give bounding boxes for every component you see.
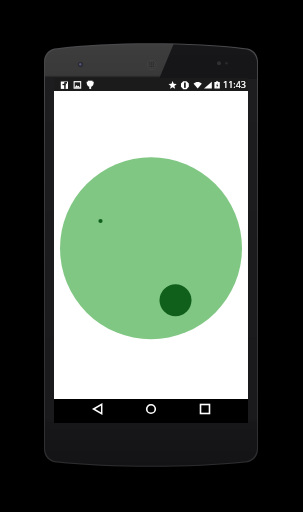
button[interactable]: Drawing canvas — [54, 91, 248, 399]
button[interactable]: Recents — [193, 399, 217, 423]
button[interactable]: Back — [86, 399, 110, 423]
staticText: 11:43 — [223, 78, 247, 90]
button[interactable]: Home — [139, 399, 163, 423]
